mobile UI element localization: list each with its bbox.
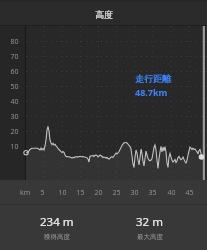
staticText: 25: [112, 188, 121, 198]
button[interactable]: 234 m: [10, 205, 103, 250]
staticText: 32 m: [136, 214, 163, 230]
staticText: 60: [10, 67, 19, 77]
staticText: 15: [76, 188, 85, 198]
staticText: 35: [148, 188, 157, 198]
staticText: 10: [58, 188, 67, 198]
staticText: 30: [10, 112, 19, 122]
staticText: 30: [130, 188, 139, 198]
staticText: 234 m: [40, 214, 74, 230]
staticText: 45: [185, 188, 194, 198]
staticText: 走行距離: [135, 73, 171, 84]
staticText: 最大高度: [137, 233, 163, 241]
staticText: 高度: [95, 9, 113, 20]
staticText: 20: [94, 188, 103, 198]
staticText: 70: [10, 52, 19, 62]
staticText: 40: [167, 188, 176, 198]
staticText: 5: [40, 188, 45, 198]
staticText: 10: [10, 142, 19, 152]
staticText: km: [20, 188, 31, 198]
staticText: 80: [10, 37, 19, 47]
button[interactable]: 32 m: [103, 205, 196, 250]
staticText: 獲得高度: [44, 233, 70, 241]
staticText: 20: [10, 127, 19, 137]
staticText: 50: [10, 82, 19, 92]
button[interactable]: 高度: [0, 0, 207, 26]
staticText: 40: [10, 97, 19, 107]
staticText: 48.7km: [135, 86, 168, 98]
